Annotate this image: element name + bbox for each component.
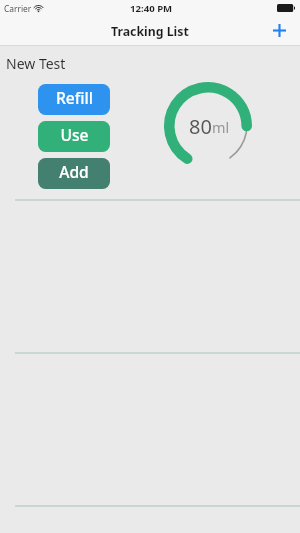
staticText: ml [212, 118, 230, 138]
staticText: New Test [6, 54, 66, 73]
staticText: Tracking List [111, 23, 189, 40]
button[interactable]: Refill [38, 84, 110, 115]
staticText: 80 [189, 113, 212, 140]
staticText: Refill [56, 87, 93, 108]
staticText: Add [59, 161, 89, 182]
staticText: Use [60, 124, 89, 145]
button[interactable]: Add [268, 19, 290, 41]
button[interactable]: Use [38, 121, 110, 152]
staticText: 12:40 PM [130, 2, 173, 15]
button[interactable]: Add [38, 158, 110, 189]
staticText: Carrier [4, 3, 32, 14]
